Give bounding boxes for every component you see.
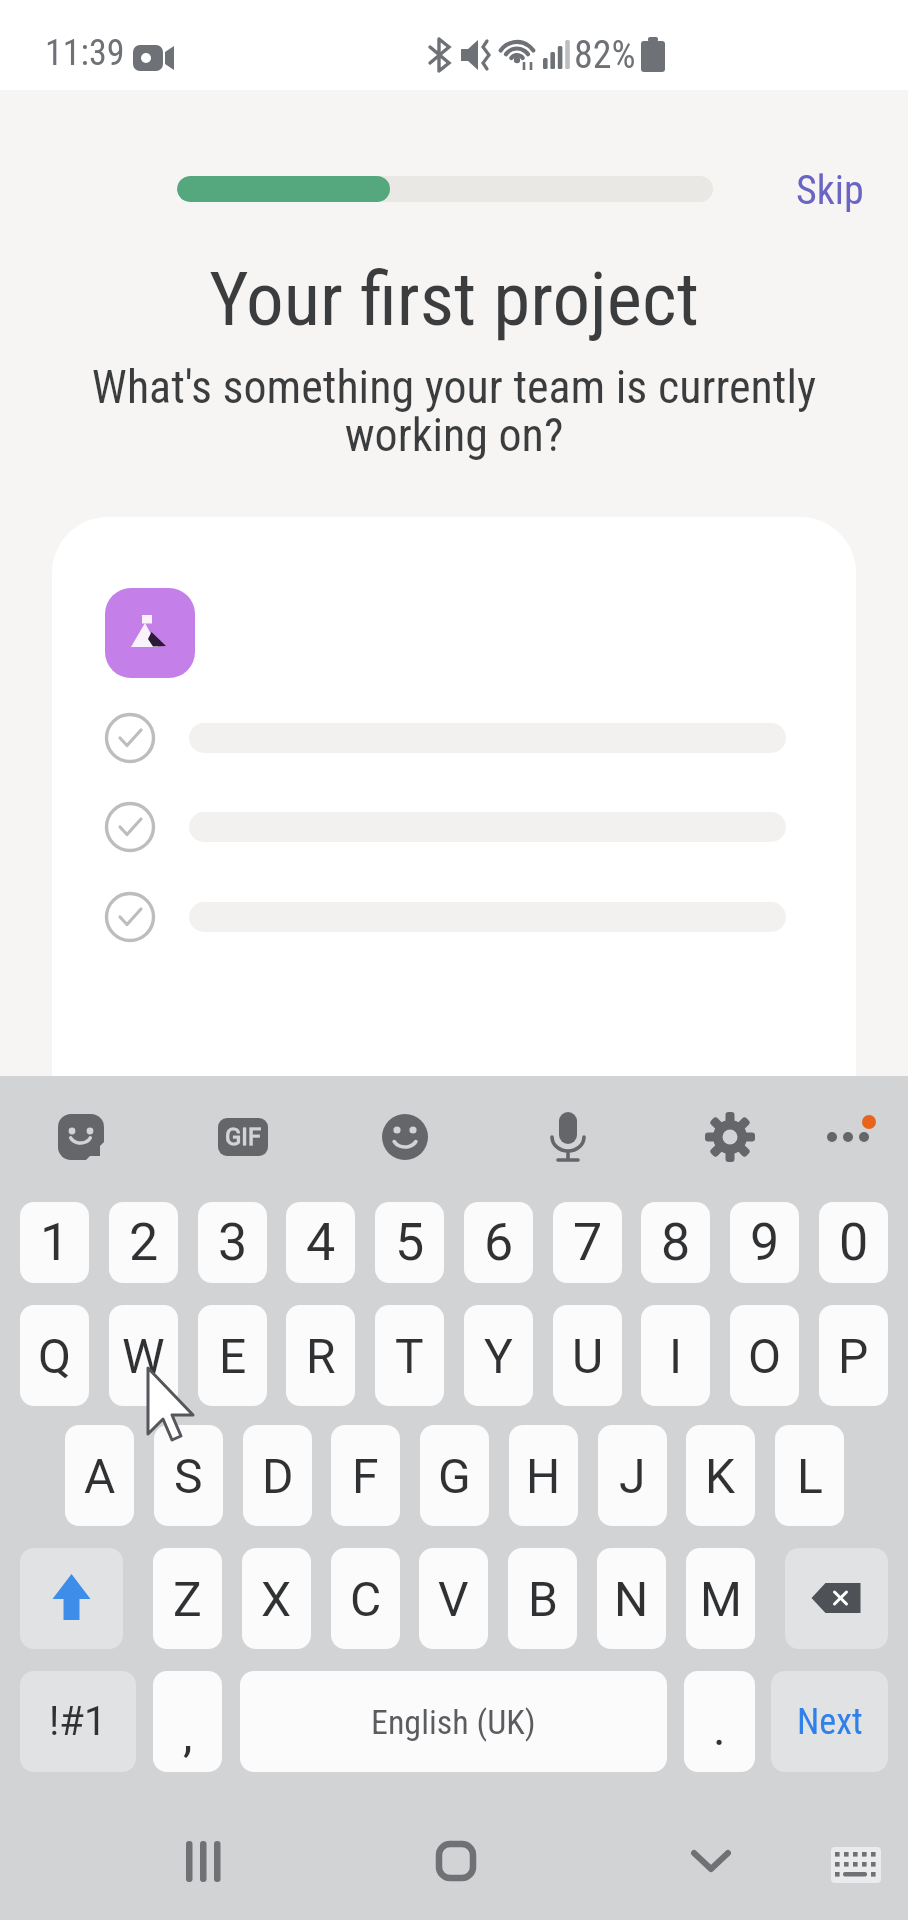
- staticText: working on?: [0, 408, 908, 462]
- staticText: E: [219, 1328, 247, 1384]
- button[interactable]: 3: [198, 1202, 267, 1283]
- staticText: 3: [218, 1212, 248, 1273]
- button[interactable]: G: [420, 1425, 489, 1526]
- button[interactable]: W: [109, 1305, 178, 1406]
- staticText: Next: [797, 1701, 863, 1743]
- button[interactable]: [380, 1112, 432, 1164]
- staticText: M: [700, 1571, 742, 1627]
- button[interactable]: [705, 1112, 757, 1164]
- staticText: H: [526, 1448, 561, 1504]
- staticText: GIF: [225, 1123, 262, 1151]
- staticText: 7: [573, 1212, 603, 1273]
- staticText: 2: [129, 1212, 159, 1273]
- button[interactable]: [670, 1830, 760, 1900]
- button[interactable]: V: [419, 1548, 488, 1649]
- staticText: A: [84, 1448, 116, 1504]
- button[interactable]: [55, 1112, 107, 1164]
- button[interactable]: [20, 1548, 123, 1649]
- button[interactable]: [410, 1830, 500, 1900]
- button[interactable]: I: [641, 1305, 710, 1406]
- staticText: What's something your team is currently: [0, 360, 908, 414]
- button[interactable]: 5: [375, 1202, 444, 1283]
- staticText: F: [352, 1448, 379, 1504]
- button[interactable]: ,: [153, 1671, 222, 1772]
- staticText: S: [174, 1448, 203, 1504]
- button[interactable]: K: [686, 1425, 755, 1526]
- staticText: J: [619, 1448, 646, 1504]
- button[interactable]: Skip: [775, 155, 885, 225]
- staticText: Y: [484, 1328, 513, 1384]
- staticText: 6: [484, 1212, 514, 1273]
- button[interactable]: N: [597, 1548, 666, 1649]
- button[interactable]: 9: [730, 1202, 799, 1283]
- button[interactable]: [160, 1830, 250, 1900]
- button[interactable]: S: [154, 1425, 223, 1526]
- button[interactable]: 7: [553, 1202, 622, 1283]
- button[interactable]: C: [331, 1548, 400, 1649]
- button[interactable]: J: [598, 1425, 667, 1526]
- staticText: 8: [661, 1212, 691, 1273]
- button[interactable]: .: [684, 1671, 755, 1772]
- staticText: ,: [183, 1706, 193, 1762]
- button[interactable]: [785, 1548, 888, 1649]
- button[interactable]: [823, 1112, 875, 1164]
- staticText: B: [528, 1571, 558, 1627]
- button[interactable]: T: [375, 1305, 444, 1406]
- staticText: 1: [40, 1212, 70, 1273]
- button[interactable]: [543, 1112, 595, 1164]
- staticText: G: [438, 1448, 471, 1504]
- button[interactable]: [105, 588, 195, 678]
- button[interactable]: Z: [153, 1548, 222, 1649]
- button[interactable]: P: [819, 1305, 888, 1406]
- staticText: K: [705, 1448, 736, 1504]
- staticText: N: [614, 1571, 649, 1627]
- button[interactable]: M: [686, 1548, 755, 1649]
- button[interactable]: Q: [20, 1305, 89, 1406]
- staticText: !#1: [49, 1698, 107, 1745]
- staticText: Q: [38, 1328, 72, 1384]
- button[interactable]: D: [243, 1425, 312, 1526]
- staticText: O: [748, 1328, 782, 1384]
- button[interactable]: F: [331, 1425, 400, 1526]
- staticText: 5: [395, 1212, 425, 1273]
- button[interactable]: 8: [641, 1202, 710, 1283]
- button[interactable]: Next: [771, 1671, 888, 1772]
- staticText: I: [669, 1328, 683, 1384]
- staticText: R: [306, 1328, 336, 1384]
- button[interactable]: [217, 1112, 269, 1164]
- button[interactable]: E: [198, 1305, 267, 1406]
- staticText: Z: [173, 1571, 202, 1627]
- staticText: English (UK): [371, 1702, 536, 1742]
- button[interactable]: H: [509, 1425, 578, 1526]
- button[interactable]: R: [286, 1305, 355, 1406]
- staticText: 82%: [574, 33, 636, 78]
- staticText: 0: [839, 1212, 869, 1273]
- staticText: V: [438, 1571, 469, 1627]
- staticText: Your first project: [0, 255, 908, 343]
- button[interactable]: 6: [464, 1202, 533, 1283]
- button[interactable]: 2: [109, 1202, 178, 1283]
- staticText: U: [572, 1328, 604, 1384]
- button[interactable]: Y: [464, 1305, 533, 1406]
- staticText: P: [838, 1328, 869, 1384]
- staticText: Skip: [796, 167, 864, 214]
- button[interactable]: A: [65, 1425, 134, 1526]
- staticText: 11:39: [45, 32, 125, 74]
- button[interactable]: 4: [286, 1202, 355, 1283]
- button[interactable]: O: [730, 1305, 799, 1406]
- staticText: W: [122, 1328, 165, 1384]
- staticText: .: [713, 1700, 726, 1756]
- button[interactable]: English (UK): [240, 1671, 667, 1772]
- staticText: T: [395, 1328, 424, 1384]
- staticText: L: [797, 1448, 823, 1504]
- button[interactable]: U: [553, 1305, 622, 1406]
- staticText: 4: [306, 1212, 336, 1273]
- button[interactable]: B: [508, 1548, 577, 1649]
- button[interactable]: L: [775, 1425, 844, 1526]
- staticText: X: [261, 1571, 292, 1627]
- button[interactable]: !#1: [20, 1671, 136, 1772]
- button[interactable]: 0: [819, 1202, 888, 1283]
- button[interactable]: X: [242, 1548, 311, 1649]
- staticText: C: [350, 1571, 382, 1627]
- button[interactable]: 1: [20, 1202, 89, 1283]
